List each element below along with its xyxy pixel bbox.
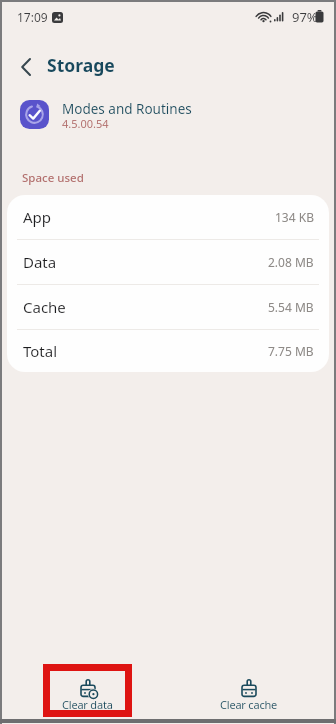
- button[interactable]: Cache: [7, 285, 329, 329]
- button[interactable]: Data: [7, 240, 329, 284]
- staticText: 134 KB: [275, 209, 314, 225]
- staticText: App: [23, 207, 52, 227]
- staticText: 5.54 MB: [268, 299, 314, 315]
- staticText: Cache: [23, 297, 66, 317]
- staticText: 2.08 MB: [268, 254, 314, 270]
- staticText: 17:09: [17, 9, 48, 25]
- staticText: Data: [23, 252, 57, 272]
- staticText: Space used: [22, 170, 84, 186]
- staticText: Storage: [47, 53, 115, 77]
- button[interactable]: App: [7, 195, 329, 239]
- button[interactable]: Total: [7, 330, 329, 372]
- staticText: Clear data: [62, 697, 113, 712]
- staticText: Clear cache: [220, 697, 278, 712]
- button[interactable]: [12, 53, 40, 81]
- staticText: Modes and Routines: [62, 100, 192, 118]
- staticText: Total: [23, 341, 58, 361]
- button[interactable]: Clear cache: [208, 674, 289, 718]
- staticText: 97%: [292, 8, 318, 26]
- button[interactable]: Clear data: [47, 674, 128, 718]
- staticText: 7.75 MB: [268, 343, 314, 359]
- staticText: 4.5.00.54: [62, 116, 109, 131]
